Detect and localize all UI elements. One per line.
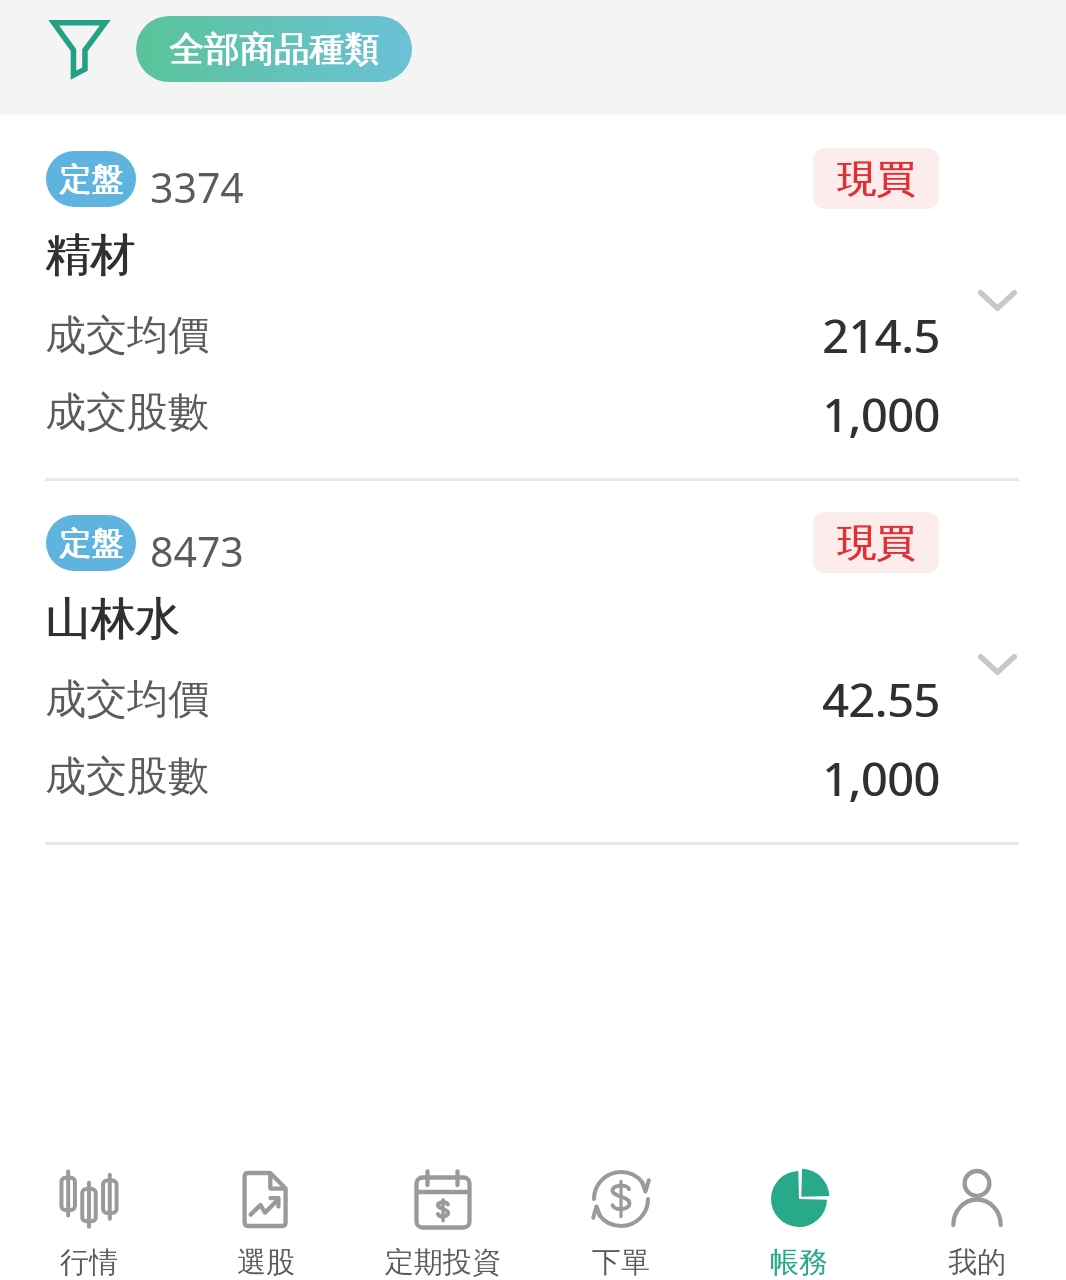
staticText: 下單	[592, 1244, 650, 1280]
staticText: 42.55	[823, 668, 941, 731]
staticText: 帳務	[770, 1244, 828, 1280]
staticText: 現買	[837, 518, 915, 567]
staticText: 1,000	[822, 747, 940, 810]
staticText: 全部商品種類	[170, 27, 380, 71]
staticText: 成交股數	[45, 751, 209, 803]
staticText: 精材	[46, 227, 136, 284]
staticText: 3374	[150, 159, 244, 215]
staticText: 現買	[838, 154, 916, 203]
staticText: 8473	[150, 523, 244, 579]
staticText: 成交均價	[45, 310, 209, 362]
staticText: 定盤	[59, 523, 123, 563]
staticText: 1,000	[823, 383, 941, 446]
staticText: 現買	[837, 154, 915, 203]
staticText: 定盤	[60, 523, 124, 563]
button[interactable]: Filter	[37, 7, 121, 91]
staticText: 成交股數	[45, 387, 209, 439]
button[interactable]: Expand	[958, 625, 1036, 703]
button[interactable]: 我的	[888, 1136, 1066, 1280]
staticText: 選股	[237, 1244, 295, 1280]
staticText: 現買	[838, 518, 916, 567]
staticText: 山林水	[46, 591, 181, 648]
button[interactable]: 定盤	[0, 479, 1066, 843]
staticText: 山林水	[45, 591, 180, 648]
staticText: 42.55	[822, 668, 940, 731]
staticText: 全部商品種類	[169, 27, 379, 71]
staticText: 成交均價	[45, 674, 209, 726]
staticText: 214.5	[822, 304, 940, 367]
button[interactable]: Expand	[958, 261, 1036, 339]
button[interactable]: 定期投資	[354, 1136, 532, 1280]
staticText: 我的	[948, 1244, 1006, 1280]
staticText: 定盤	[60, 159, 124, 199]
staticText: 1,000	[823, 747, 941, 810]
staticText: 行情	[60, 1244, 118, 1280]
staticText: 1,000	[822, 383, 940, 446]
button[interactable]: 下單	[532, 1136, 710, 1280]
button[interactable]: 帳務	[710, 1136, 888, 1280]
staticText: 精材	[45, 227, 135, 284]
button[interactable]: 行情	[0, 1136, 177, 1280]
staticText: 定期投資	[385, 1244, 501, 1280]
button[interactable]: 定盤	[0, 115, 1066, 479]
staticText: 214.5	[823, 304, 941, 367]
button[interactable]: 全部商品種類	[136, 16, 412, 82]
staticText: 定盤	[59, 159, 123, 199]
button[interactable]: 選股	[177, 1136, 354, 1280]
